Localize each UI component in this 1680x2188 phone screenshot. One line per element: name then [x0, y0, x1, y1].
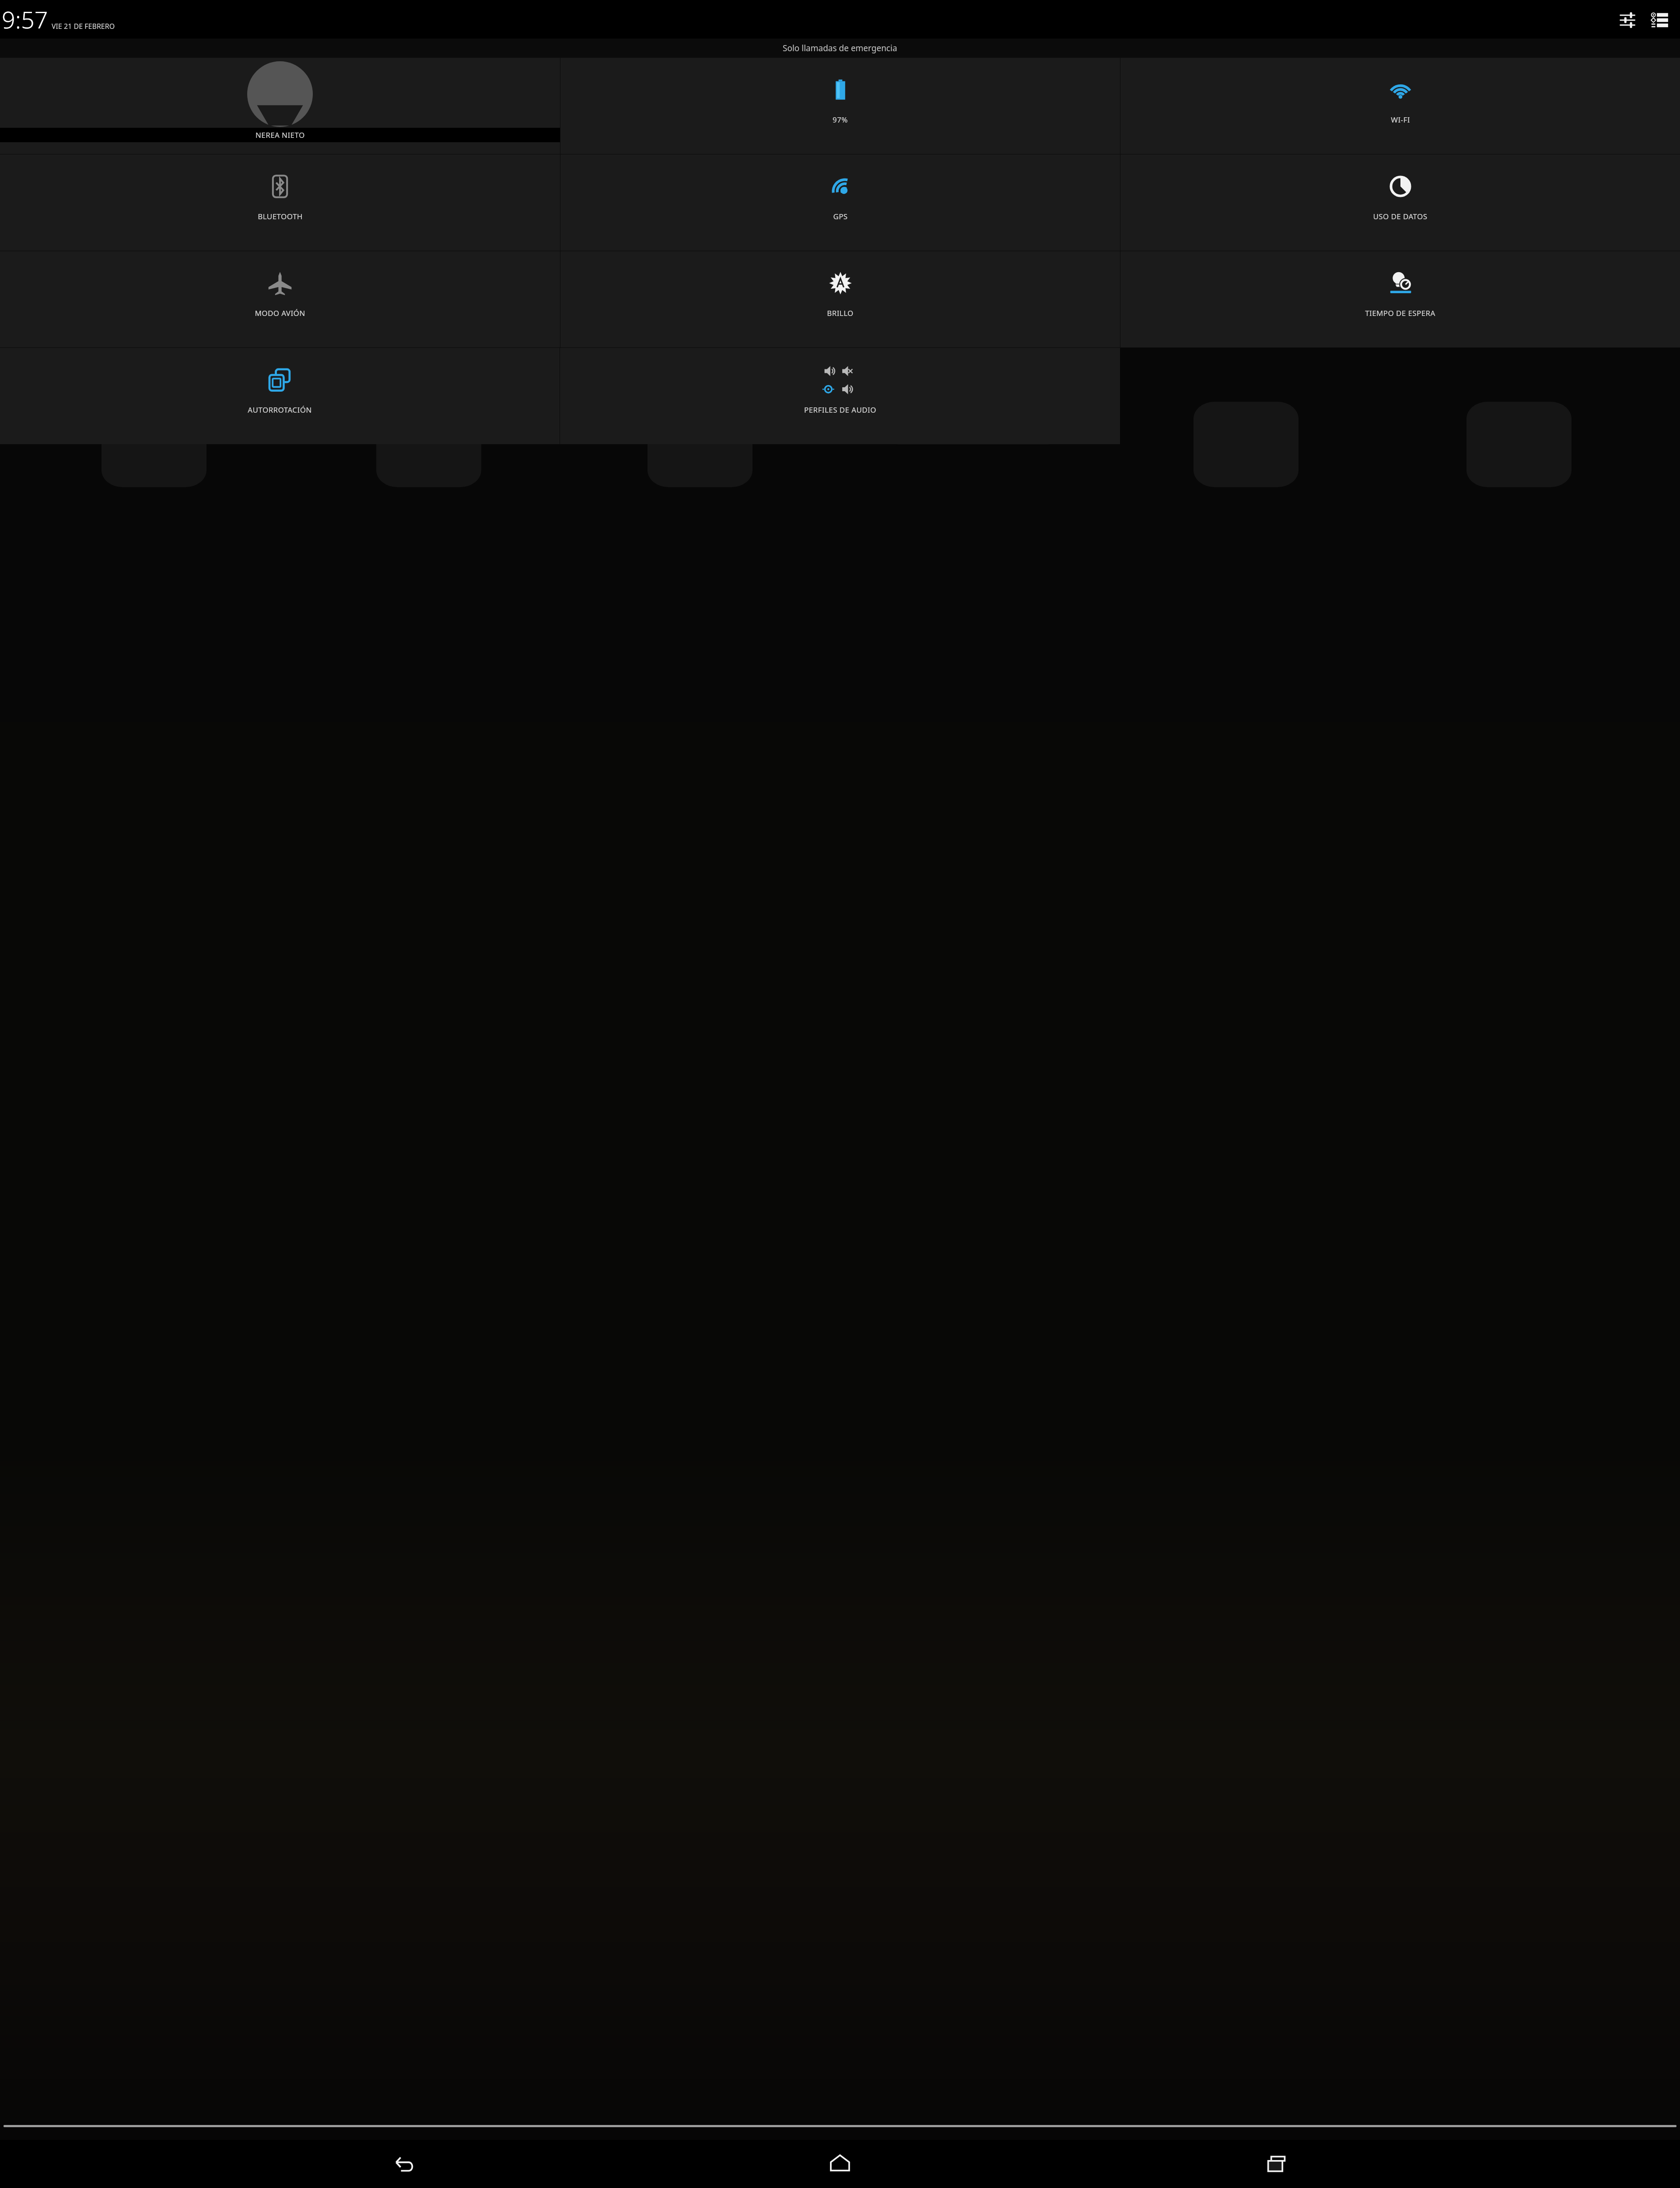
button[interactable]: Configuración: [1613, 6, 1641, 34]
staticText: BRILLO: [827, 308, 854, 318]
staticText: TIEMPO DE ESPERA: [1365, 308, 1435, 318]
staticText: MODO AVIÓN: [255, 308, 305, 318]
staticText: 97%: [833, 115, 848, 125]
button[interactable]: Cerrar panel: [0, 2116, 1680, 2135]
button[interactable]: 97%: [560, 58, 1120, 154]
button[interactable]: NEREA NIETO: [0, 58, 560, 154]
staticText: NEREA NIETO: [255, 130, 305, 140]
button[interactable]: MODO AVIÓN: [0, 251, 560, 347]
button[interactable]: BLUETOOTH: [0, 154, 560, 251]
staticText: VIE 21 DE FEBRERO: [52, 21, 115, 31]
button[interactable]: BRILLO: [560, 251, 1120, 347]
staticText: USO DE DATOS: [1373, 211, 1428, 221]
staticText: BLUETOOTH: [258, 211, 303, 221]
button[interactable]: TIEMPO DE ESPERA: [1120, 251, 1680, 347]
button[interactable]: WI-FI: [1120, 58, 1680, 154]
button[interactable]: Notificaciones: [1646, 6, 1674, 34]
button[interactable]: Aplicaciones recientes: [1244, 2142, 1309, 2186]
button[interactable]: AUTORROTACIÓN: [0, 348, 560, 444]
button[interactable]: Atrás: [371, 2142, 437, 2186]
button[interactable]: USO DE DATOS: [1120, 154, 1680, 251]
staticText: 9:57: [2, 3, 48, 35]
staticText: WI-FI: [1391, 115, 1410, 125]
button[interactable]: PERFILES DE AUDIO: [560, 348, 1120, 444]
staticText: AUTORROTACIÓN: [248, 405, 312, 415]
staticText: PERFILES DE AUDIO: [804, 405, 876, 415]
button[interactable]: Inicio: [807, 2142, 873, 2186]
staticText: Solo llamadas de emergencia: [783, 42, 897, 54]
button[interactable]: GPS: [560, 154, 1120, 251]
staticText: GPS: [833, 211, 848, 221]
